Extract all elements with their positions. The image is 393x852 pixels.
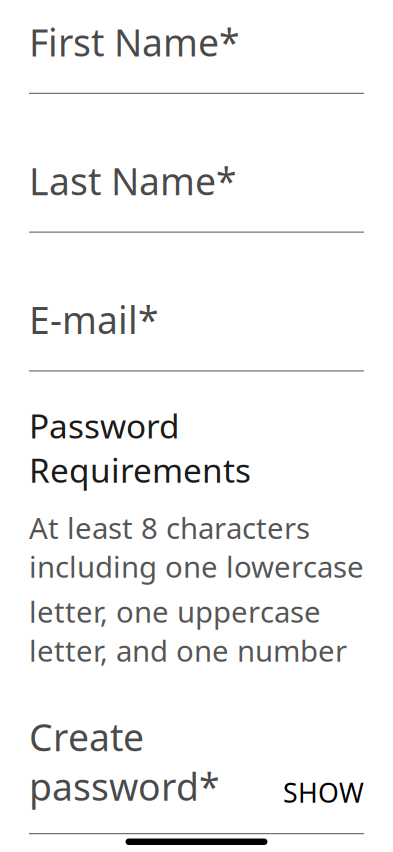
staticText: Password Requirements <box>29 403 251 492</box>
staticText: E-mail* <box>29 295 159 344</box>
button[interactable]: SHOW <box>283 775 364 811</box>
staticText: Create password* <box>29 712 220 811</box>
staticText: letter, one uppercase letter, and one nu… <box>29 592 347 670</box>
staticText: SHOW <box>283 775 364 810</box>
staticText: At least 8 characters including one lowe… <box>29 508 364 586</box>
staticText: First Name* <box>29 17 240 67</box>
staticText: Last Name* <box>29 156 237 206</box>
